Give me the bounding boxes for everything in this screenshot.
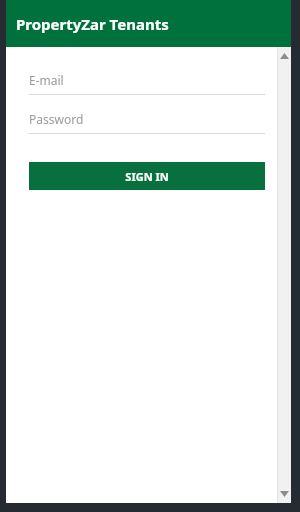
button[interactable]: Password — [29, 103, 265, 134]
staticText: E-mail — [29, 72, 64, 88]
staticText: Password — [29, 111, 84, 127]
staticText: PropertyZar Tenants — [16, 14, 169, 34]
button[interactable]: PropertyZar Tenants — [6, 0, 291, 47]
staticText: SIGN IN — [125, 169, 169, 184]
other: Scrollbar — [277, 47, 291, 503]
button[interactable]: SIGN IN — [29, 162, 265, 190]
button[interactable]: E-mail — [29, 64, 265, 95]
